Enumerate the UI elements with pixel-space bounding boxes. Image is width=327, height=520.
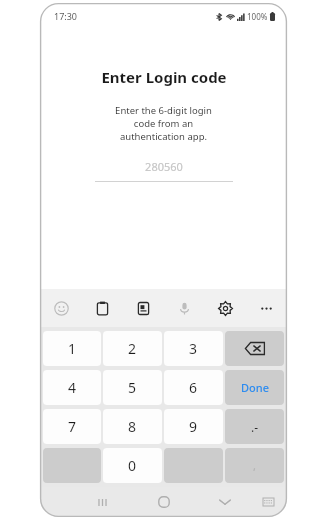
button[interactable]: Emoji xyxy=(40,289,82,327)
staticText: 6 xyxy=(189,378,198,397)
button[interactable]: 0 xyxy=(103,448,162,483)
staticText: Enter the 6-digit login code from an aut… xyxy=(115,104,212,143)
staticText: Enter Login code xyxy=(101,67,227,87)
staticText: 3 xyxy=(189,339,198,358)
button[interactable]: 280560 xyxy=(95,159,233,182)
button[interactable]: .- xyxy=(225,409,284,444)
staticText: 2 xyxy=(128,339,137,358)
staticText: 0 xyxy=(128,456,137,475)
button[interactable]: Clipboard xyxy=(82,289,123,327)
button[interactable]: Text sticker xyxy=(123,289,164,327)
staticText: 7 xyxy=(68,417,77,436)
staticText: .- xyxy=(251,419,259,435)
button[interactable]: 5 xyxy=(103,370,162,405)
button[interactable]: Keyboard settings xyxy=(205,289,246,327)
button[interactable]: 2 xyxy=(103,331,162,366)
button[interactable]: Home xyxy=(133,487,194,517)
staticText: Done xyxy=(241,380,269,395)
button[interactable]: 3 xyxy=(164,331,223,366)
staticText: 8 xyxy=(128,417,137,436)
button[interactable]: More options xyxy=(246,289,287,327)
button[interactable]: 6 xyxy=(164,370,223,405)
button[interactable]: Voice input xyxy=(164,289,205,327)
button[interactable]: Backspace xyxy=(225,331,284,366)
staticText: 17:30 xyxy=(54,10,78,22)
button[interactable]: 9 xyxy=(164,409,223,444)
button[interactable]: Switch keyboard xyxy=(255,487,281,517)
button[interactable]: 4 xyxy=(43,370,101,405)
staticText: 280560 xyxy=(145,159,183,174)
staticText: 1 xyxy=(68,339,77,358)
button[interactable]: 1 xyxy=(43,331,101,366)
button[interactable]: Hide keyboard xyxy=(194,487,255,517)
button[interactable]: Recents xyxy=(72,487,133,517)
staticText: , xyxy=(253,458,256,473)
button[interactable]: Done xyxy=(225,370,284,405)
staticText: 9 xyxy=(189,417,198,436)
staticText: 100% xyxy=(247,11,268,22)
button[interactable]: 8 xyxy=(103,409,162,444)
staticText: 4 xyxy=(68,378,77,397)
button[interactable]: 7 xyxy=(43,409,101,444)
staticText: 5 xyxy=(128,378,137,397)
